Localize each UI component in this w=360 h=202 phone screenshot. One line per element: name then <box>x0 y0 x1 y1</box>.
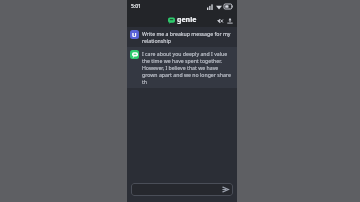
button[interactable]: Mute <box>215 16 224 25</box>
staticText: 5:01 <box>131 3 141 10</box>
button[interactable]: Download <box>225 16 234 25</box>
button[interactable]: I care about you deeply and I value the … <box>127 47 237 88</box>
staticText: U <box>132 31 137 39</box>
button[interactable]: Send <box>131 183 233 196</box>
button[interactable]: U <box>127 27 237 47</box>
staticText: Write me a breakup message for my relati… <box>142 30 233 44</box>
staticText: genie <box>177 15 197 25</box>
button[interactable]: genie <box>168 15 197 25</box>
staticText: I care about you deeply and I value the … <box>142 50 233 85</box>
button[interactable]: Send <box>221 185 230 194</box>
